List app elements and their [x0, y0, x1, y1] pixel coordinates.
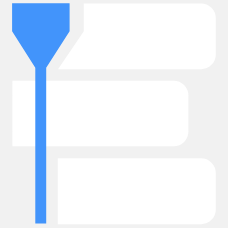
- button[interactable]: Filter list: [0, 0, 228, 228]
